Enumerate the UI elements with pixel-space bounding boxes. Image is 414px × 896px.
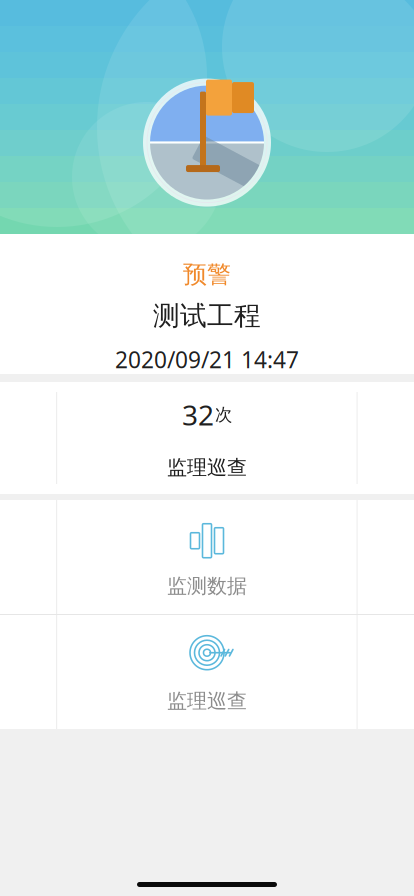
staticText: 监理巡查	[167, 689, 247, 713]
button[interactable]: 32	[57, 382, 357, 494]
button[interactable]: 监理巡查	[57, 615, 357, 729]
staticText: 监测数据	[167, 574, 247, 598]
staticText: 32	[182, 396, 214, 433]
staticText: 2020/09/21 14:47	[115, 344, 299, 374]
staticText: 预警	[183, 260, 231, 289]
staticText: 测试工程	[153, 300, 261, 332]
staticText: 次	[215, 404, 232, 425]
staticText: 监理巡查	[167, 455, 247, 480]
button[interactable]: 监测数据	[57, 500, 357, 614]
